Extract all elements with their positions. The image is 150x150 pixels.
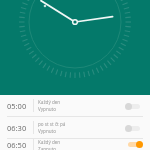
staticText: po st st čt pá bbox=[38, 121, 66, 127]
staticText: 06:50 bbox=[7, 140, 31, 150]
button[interactable]: Alarm off bbox=[124, 121, 144, 135]
staticText: Vypnuto bbox=[38, 128, 57, 134]
button[interactable]: Analog clock bbox=[0, 0, 150, 95]
button[interactable]: 06:50 bbox=[0, 139, 150, 150]
staticText: 06:30 bbox=[7, 123, 31, 133]
staticText: Každý den bbox=[38, 139, 61, 145]
staticText: 05:00 bbox=[7, 101, 31, 111]
button[interactable]: 06:30 bbox=[0, 117, 150, 138]
staticText: Každý den bbox=[38, 99, 61, 105]
staticText: Zapnuto bbox=[38, 146, 57, 150]
button[interactable]: Alarm off bbox=[124, 99, 144, 113]
staticText: Vypnuto bbox=[38, 106, 57, 112]
button[interactable]: Alarm on bbox=[124, 139, 144, 150]
button[interactable]: 05:00 bbox=[0, 95, 150, 116]
